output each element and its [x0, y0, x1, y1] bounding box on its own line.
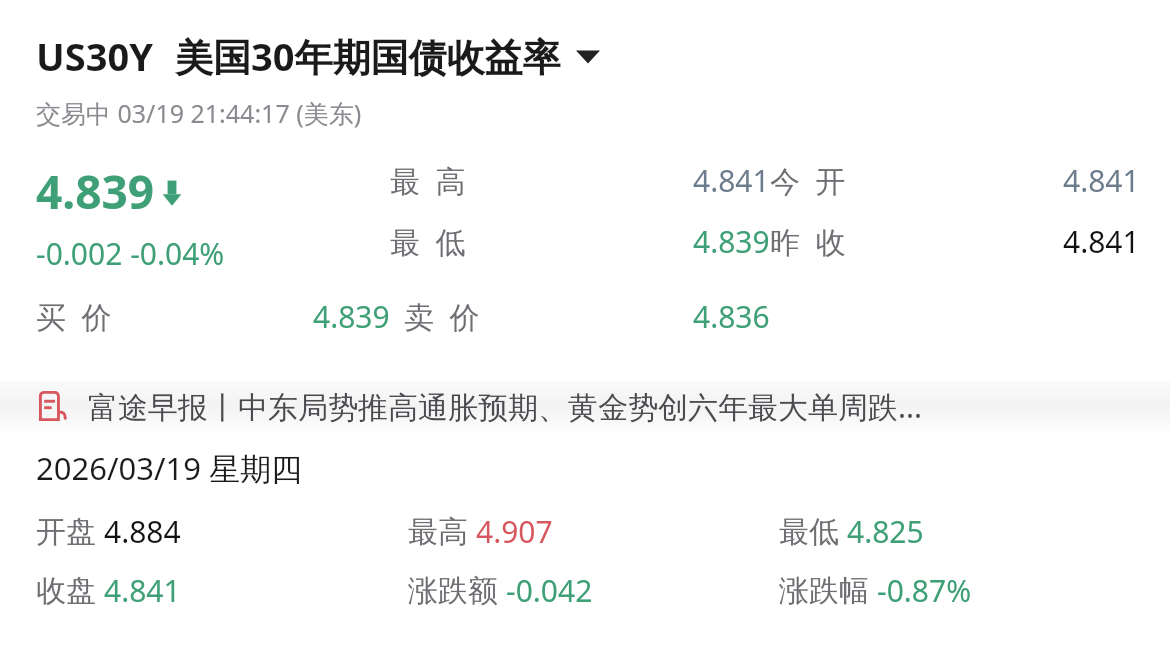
staticText: 2026/03/19 星期四 — [36, 447, 302, 489]
staticText: 4.836 — [693, 296, 770, 337]
staticText: 最低 — [779, 513, 839, 551]
staticText: 卖 价 — [404, 296, 480, 337]
staticText: 最 高 — [390, 160, 466, 201]
staticText: 美国30年期国债收益率 — [175, 30, 561, 82]
staticText: 4.841 — [1063, 160, 1140, 201]
button[interactable]: 富途早报丨中东局势推高通胀预期、黄金势创六年最大单周跌... — [0, 381, 1170, 431]
button[interactable]: US30Y — [36, 30, 1170, 82]
staticText: 收盘 — [36, 572, 96, 610]
staticText: 4.841 — [693, 160, 770, 201]
staticText: 4.907 — [476, 511, 553, 552]
staticText: 4.841 — [1063, 221, 1140, 262]
staticText: 最高 — [408, 513, 468, 551]
staticText: 涨跌幅 — [779, 572, 869, 610]
staticText: -0.042 — [506, 570, 593, 611]
staticText: 最 低 — [390, 221, 466, 262]
staticText: 今 开 — [770, 160, 846, 201]
staticText: -0.87% — [877, 570, 972, 611]
staticText: 开盘 — [36, 513, 96, 551]
button[interactable]: 昨 收 — [770, 221, 1140, 262]
staticText: 4.839 — [36, 160, 155, 223]
staticText: 4.839 — [313, 296, 390, 337]
staticText: 富途早报丨中东局势推高通胀预期、黄金势创六年最大单周跌... — [88, 386, 923, 427]
staticText: -0.002 -0.04% — [36, 233, 225, 274]
button[interactable]: 最 高 — [390, 160, 770, 201]
button[interactable]: 最 低 — [390, 221, 770, 262]
staticText: US30Y — [36, 30, 153, 82]
staticText: 交易中 03/19 21:44:17 (美东) — [36, 96, 362, 130]
staticText: 4.825 — [847, 511, 924, 552]
staticText: 4.884 — [104, 511, 181, 552]
staticText: 买 价 — [36, 296, 112, 337]
button[interactable]: 今 开 — [770, 160, 1140, 201]
staticText: 昨 收 — [770, 221, 846, 262]
staticText: 4.839 — [693, 221, 770, 262]
staticText: 4.841 — [104, 570, 181, 611]
staticText: 涨跌额 — [408, 572, 498, 610]
